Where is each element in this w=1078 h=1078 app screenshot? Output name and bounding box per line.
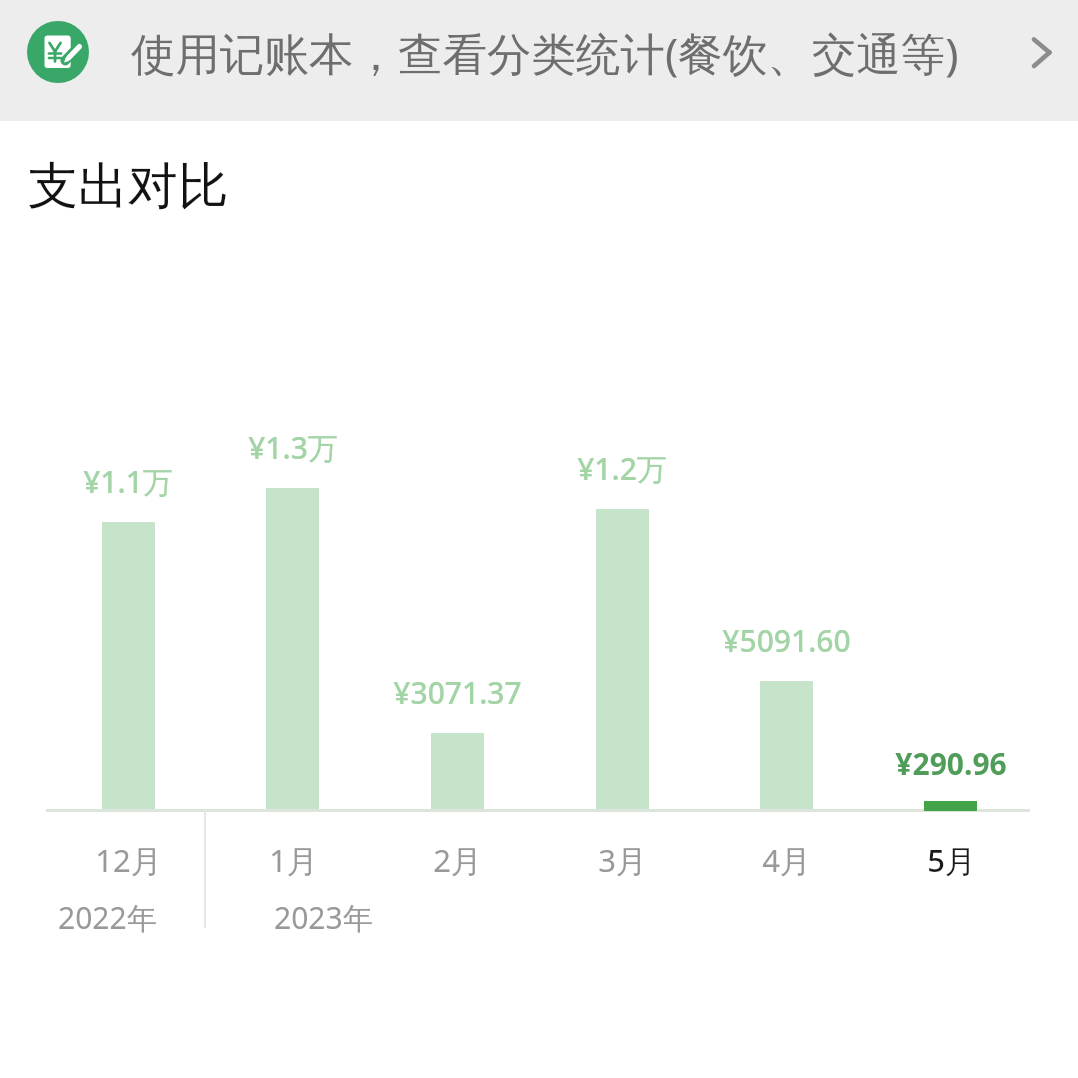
staticText: ¥290.96 — [895, 743, 1007, 784]
staticText: 2023年 — [274, 897, 373, 938]
staticText: ¥5091.60 — [722, 620, 851, 661]
staticText: 1月 — [269, 839, 318, 881]
staticText: 支出对比 — [28, 155, 228, 218]
staticText: ¥1.1万 — [83, 461, 173, 502]
staticText: 12月 — [95, 839, 162, 881]
staticText: 使用记账本，查看分类统计(餐饮、交通等) — [131, 22, 959, 83]
staticText: 2022年 — [58, 897, 157, 938]
staticText: 2月 — [433, 839, 482, 881]
button[interactable]: 使用记账本，查看分类统计(餐饮、交通等) — [0, 0, 1078, 121]
staticText: 3月 — [598, 839, 647, 881]
staticText: 4月 — [762, 839, 811, 881]
staticText: 5月 — [927, 839, 976, 881]
staticText: ¥1.3万 — [248, 427, 338, 468]
staticText: ¥3071.37 — [393, 672, 522, 713]
staticText: ¥1.2万 — [577, 448, 667, 489]
